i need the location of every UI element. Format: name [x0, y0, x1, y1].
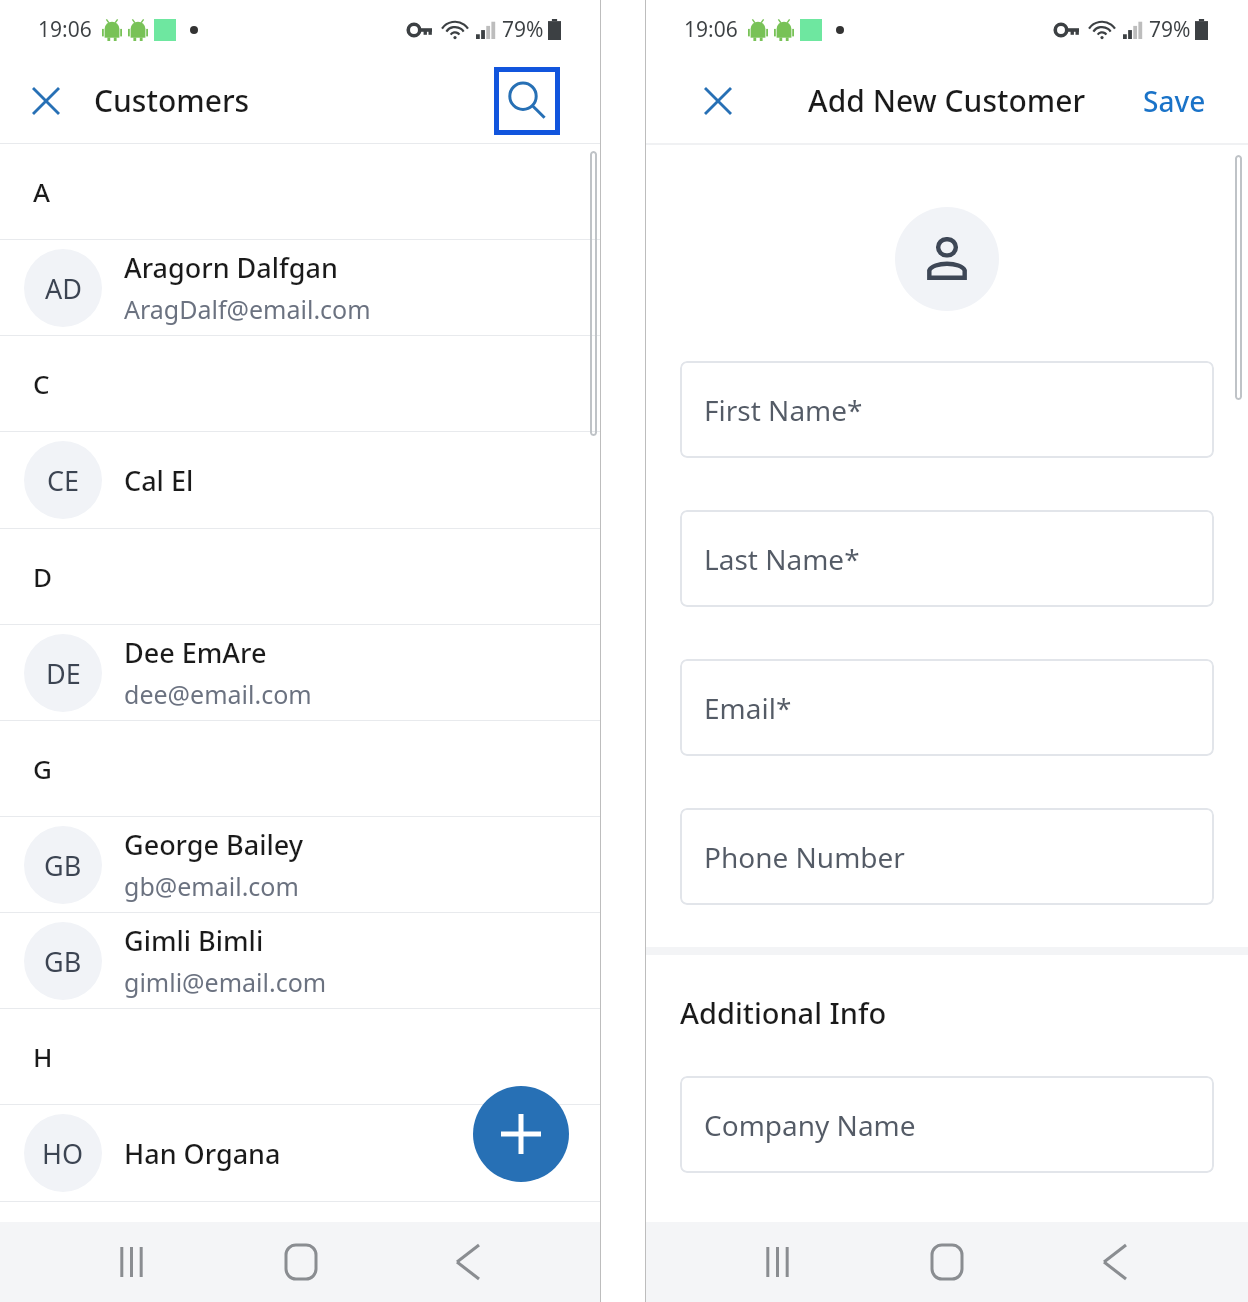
button[interactable]: CE	[0, 432, 601, 529]
staticText: Han Organa	[124, 1135, 281, 1172]
staticText: G	[33, 751, 52, 786]
button[interactable]: GB	[0, 817, 601, 913]
staticText: Email*	[704, 689, 792, 727]
button[interactable]: Customer photo	[895, 207, 999, 311]
button[interactable]: Company Name	[680, 1076, 1214, 1173]
button[interactable]: Close	[22, 77, 70, 125]
button[interactable]: GB	[0, 913, 601, 1009]
staticText: CE	[47, 462, 80, 499]
staticText: dee@email.com	[124, 677, 312, 711]
staticText: 79%	[502, 15, 544, 44]
staticText: gb@email.com	[124, 869, 299, 903]
button[interactable]: Save	[1137, 74, 1212, 128]
staticText: Add New Customer	[808, 80, 1086, 121]
staticText: First Name*	[704, 391, 863, 429]
button[interactable]: Phone Number	[680, 808, 1214, 905]
staticText: Phone Number	[704, 838, 905, 876]
staticText: GB	[44, 847, 82, 884]
button[interactable]: Add customer	[473, 1086, 569, 1182]
staticText: GB	[44, 943, 82, 980]
staticText: gimli@email.com	[124, 965, 327, 999]
button[interactable]: Home	[266, 1227, 336, 1297]
staticText: Gimli Bimli	[124, 922, 264, 959]
button[interactable]: Email*	[680, 659, 1214, 756]
staticText: Dee EmAre	[124, 634, 267, 671]
staticText: DE	[46, 655, 81, 692]
staticText: Customers	[94, 80, 250, 121]
staticText: Additional Info	[680, 993, 887, 1032]
staticText: 19:06	[38, 15, 92, 44]
staticText: Cal El	[124, 462, 194, 499]
button[interactable]: First Name*	[680, 361, 1214, 458]
button[interactable]: Close	[694, 77, 742, 125]
button[interactable]: Back	[1080, 1227, 1150, 1297]
button[interactable]: AD	[0, 240, 601, 336]
button[interactable]: Back	[433, 1227, 503, 1297]
button[interactable]: Last Name*	[680, 510, 1214, 607]
button[interactable]: HO	[0, 1105, 601, 1202]
button[interactable]: Home	[912, 1227, 982, 1297]
staticText: 19:06	[684, 15, 738, 44]
staticText: AD	[45, 270, 82, 307]
staticText: HO	[42, 1135, 84, 1172]
staticText: Last Name*	[704, 540, 860, 578]
staticText: 79%	[1149, 15, 1191, 44]
staticText: AragDalf@email.com	[124, 292, 371, 326]
button[interactable]: Recent apps	[744, 1227, 814, 1297]
staticText: A	[33, 174, 51, 209]
staticText: Save	[1143, 82, 1206, 120]
staticText: H	[33, 1039, 53, 1074]
button[interactable]: Recent apps	[98, 1227, 168, 1297]
staticText: C	[33, 366, 50, 401]
staticText: D	[33, 559, 53, 594]
staticText: George Bailey	[124, 826, 303, 863]
staticText: Company Name	[704, 1106, 916, 1144]
staticText: Aragorn Dalfgan	[124, 249, 338, 286]
button[interactable]: Search	[494, 67, 560, 135]
button[interactable]: DE	[0, 625, 601, 721]
